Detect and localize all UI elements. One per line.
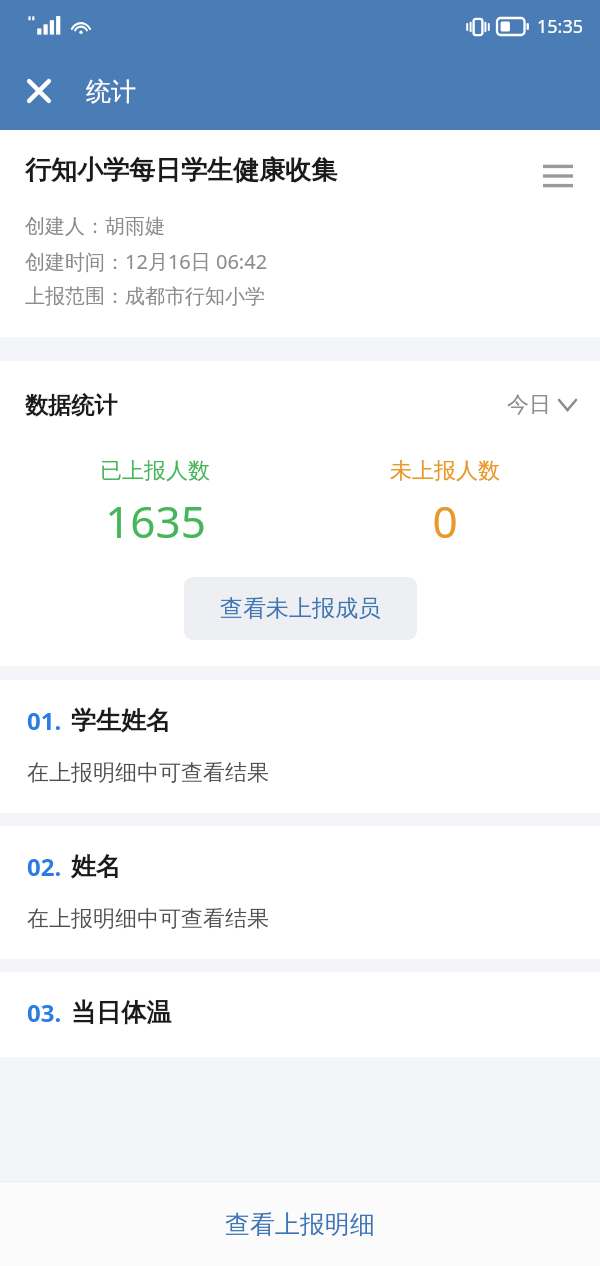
staticText: 今日 [507, 391, 551, 419]
staticText: 15:35 [537, 14, 584, 39]
button[interactable]: 01. [0, 680, 600, 813]
button[interactable]: Menu [532, 150, 584, 202]
staticText: 上报范围：成都市行知小学 [25, 284, 265, 309]
staticText: 已上报人数 [100, 457, 210, 485]
button[interactable]: Close [12, 64, 66, 118]
staticText: 学生姓名 [71, 705, 171, 736]
staticText: 01. [27, 704, 62, 737]
staticText: 查看未上报成员 [220, 594, 381, 623]
staticText: 1635 [105, 491, 206, 551]
button[interactable]: 03. [0, 972, 600, 1057]
staticText: 未上报人数 [390, 457, 500, 485]
staticText: 03. [27, 996, 62, 1029]
button[interactable]: 02. [0, 826, 600, 959]
staticText: 姓名 [71, 851, 121, 882]
staticText: 当日体温 [71, 997, 171, 1028]
staticText: 创建人：胡雨婕 [25, 214, 165, 239]
staticText: 在上报明细中可查看结果 [27, 759, 269, 787]
staticText: 统计 [86, 76, 136, 107]
button[interactable]: 今日 [503, 385, 580, 425]
staticText: 0 [432, 491, 458, 551]
button[interactable]: 查看未上报成员 [184, 577, 417, 640]
staticText: 行知小学每日学生健康收集 [25, 154, 532, 187]
staticText: 02. [27, 850, 62, 883]
staticText: 创建时间：12月16日 06:42 [25, 248, 268, 275]
staticText: 在上报明细中可查看结果 [27, 905, 269, 933]
staticText: 查看上报明细 [225, 1209, 375, 1240]
button[interactable]: 查看上报明细 [0, 1182, 600, 1266]
staticText: 数据统计 [25, 391, 503, 420]
